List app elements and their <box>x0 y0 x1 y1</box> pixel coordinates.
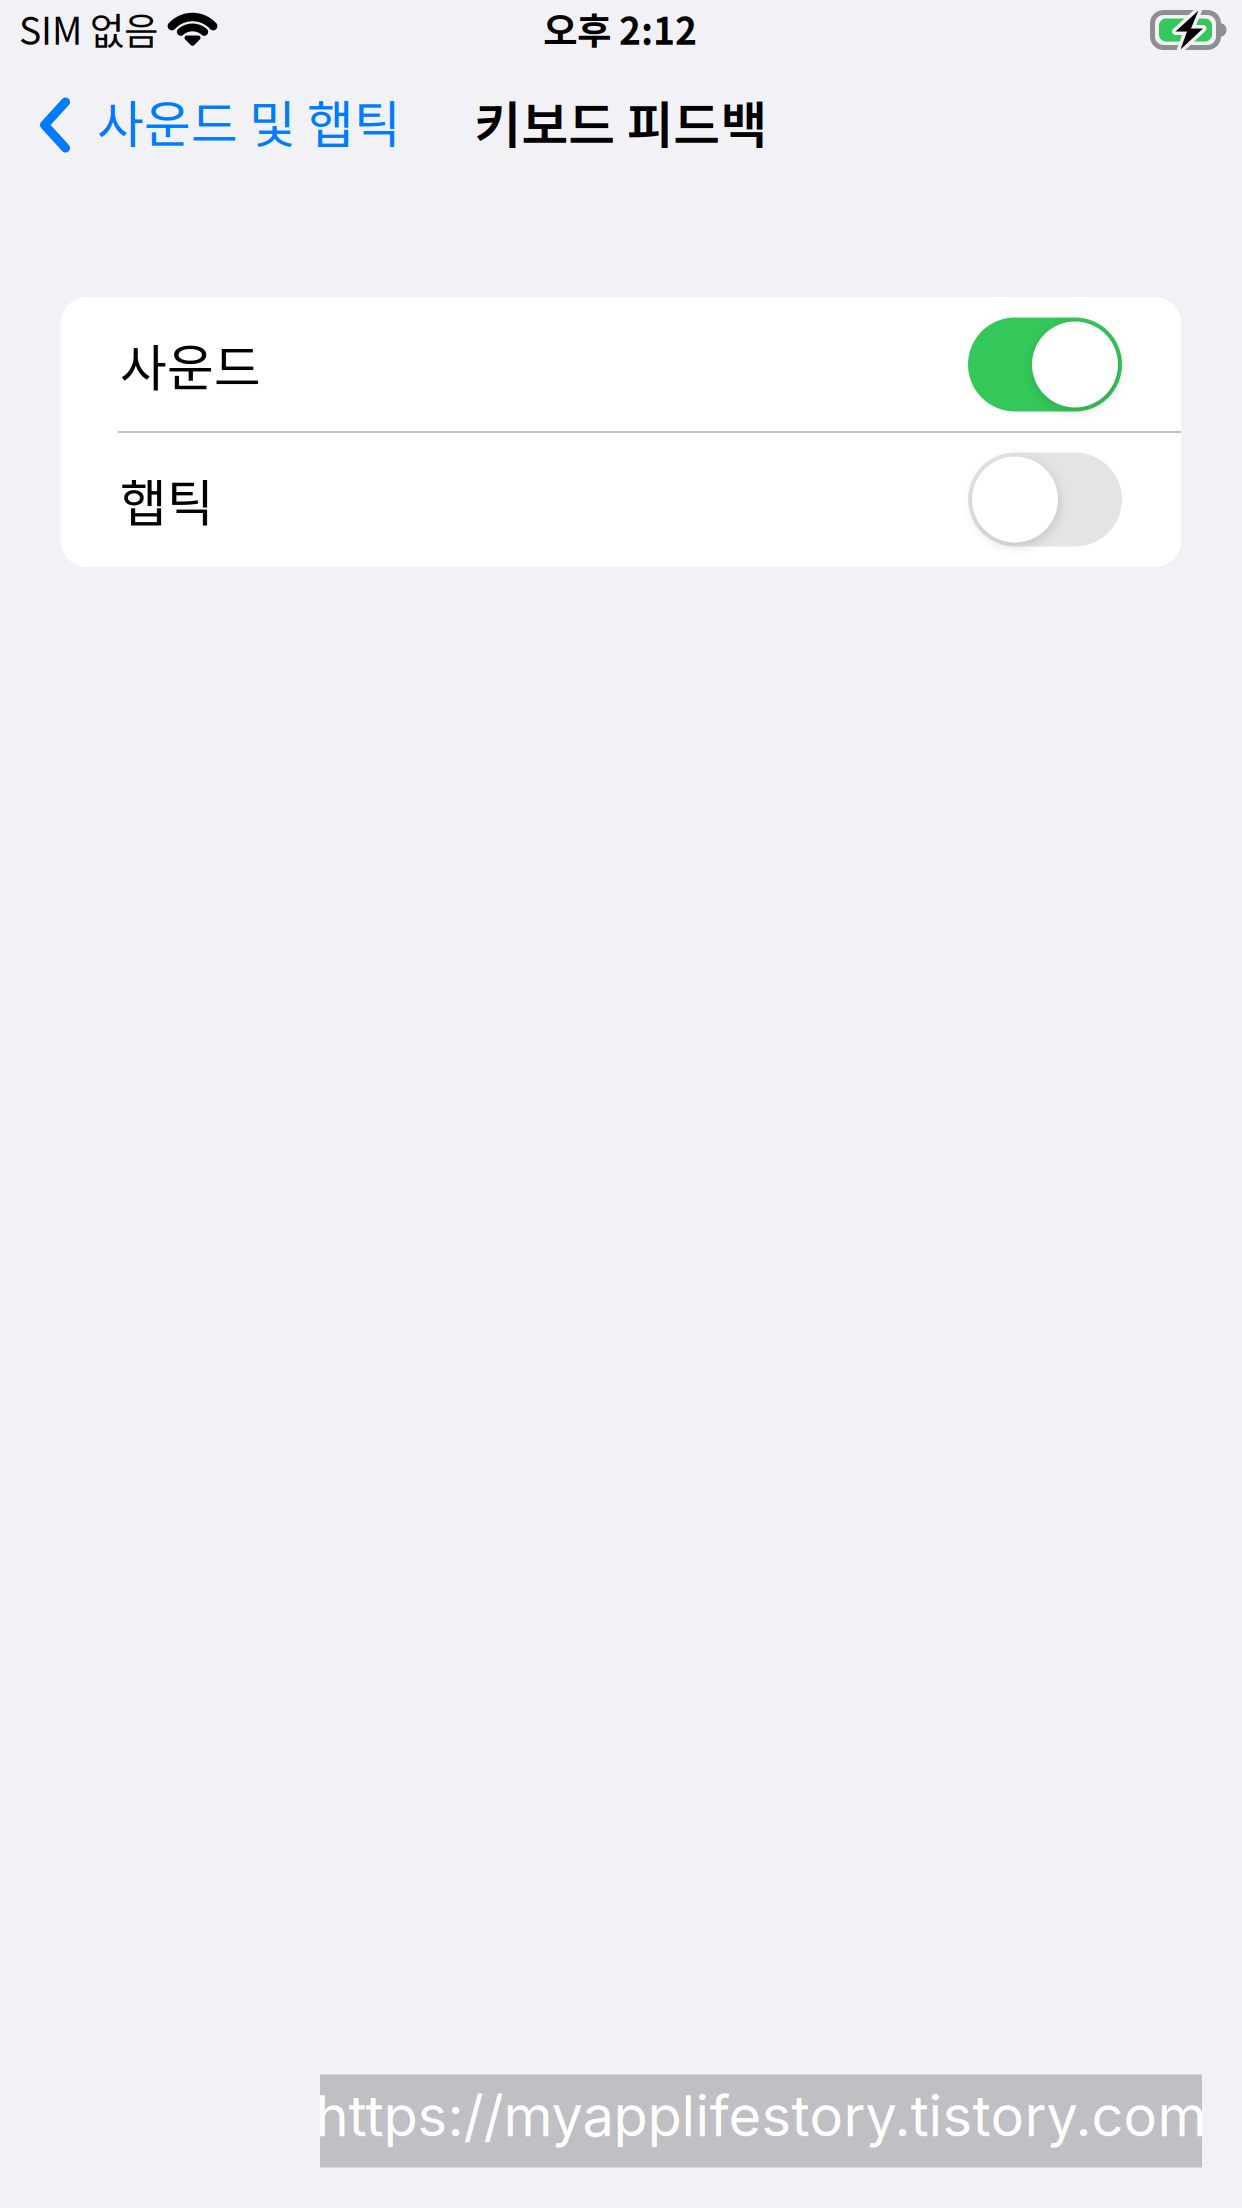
staticText: https://myapplifestory.tistory.com <box>315 2082 1206 2150</box>
button[interactable]: 사운드, 켬 <box>61 297 1181 432</box>
staticText: 사운드 <box>120 328 261 401</box>
staticText: SIM 없음 <box>19 1 158 56</box>
staticText: 햅틱 <box>120 463 214 536</box>
staticText: 사운드 및 햅틱 <box>97 84 401 158</box>
button[interactable]: 햅틱, 끔 <box>61 432 1181 567</box>
staticText: 키보드 피드백 <box>474 85 767 159</box>
button[interactable]: 뒤로, 사운드 및 햅틱 <box>0 0 1242 2208</box>
staticText: 오후 2:12 <box>543 1 697 56</box>
